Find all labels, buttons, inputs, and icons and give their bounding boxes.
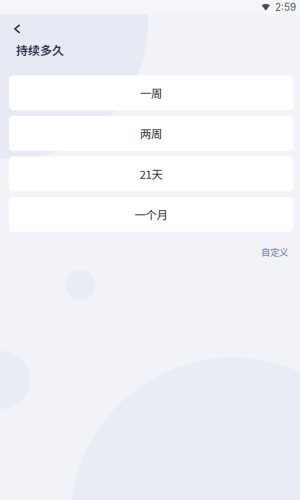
staticText: 两周	[140, 125, 162, 142]
staticText: 2:59	[275, 1, 296, 13]
button[interactable]: 21天	[9, 156, 293, 191]
button[interactable]: 一周	[9, 75, 293, 110]
staticText: 21天	[139, 166, 162, 182]
button[interactable]: Back	[0, 14, 33, 36]
button[interactable]: 两周	[9, 116, 293, 151]
staticText: 一周	[140, 85, 162, 101]
staticText: 持续多久	[16, 41, 64, 58]
staticText: 一个月	[134, 206, 167, 223]
staticText: 自定义	[261, 245, 288, 258]
button[interactable]: 一个月	[9, 197, 293, 232]
button[interactable]: 自定义	[257, 242, 292, 261]
